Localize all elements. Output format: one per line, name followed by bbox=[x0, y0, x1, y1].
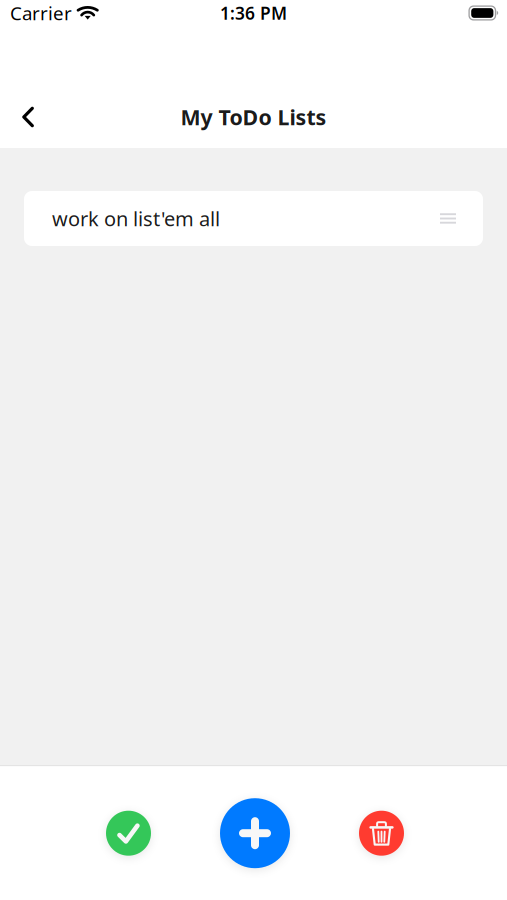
staticText: 1:36 PM bbox=[220, 1, 287, 24]
button[interactable]: Back bbox=[0, 92, 52, 141]
staticText: My ToDo Lists bbox=[180, 103, 326, 131]
staticText: Carrier bbox=[10, 1, 72, 25]
button[interactable]: Delete bbox=[359, 811, 404, 856]
button[interactable]: Mark complete bbox=[106, 811, 151, 856]
button[interactable]: work on list'em all bbox=[24, 191, 483, 246]
staticText: work on list'em all bbox=[52, 205, 220, 232]
button[interactable]: Add list bbox=[220, 798, 290, 868]
